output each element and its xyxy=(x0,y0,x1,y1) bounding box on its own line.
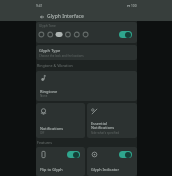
button[interactable]: Glyph Type xyxy=(36,45,137,60)
staticText: ▾▾ 100 xyxy=(127,4,137,8)
button[interactable]: Toggle xyxy=(119,151,132,158)
staticText: None xyxy=(40,94,48,98)
button[interactable]: Toggle xyxy=(67,151,80,158)
button[interactable]: Essential Notifications xyxy=(87,103,137,138)
staticText: Choose the look and feel options xyxy=(39,54,84,57)
staticText: Features xyxy=(37,140,52,145)
staticText: Flip to Glyph xyxy=(40,167,63,172)
button[interactable]: Ringtone xyxy=(36,71,137,101)
staticText: Ringtone xyxy=(40,89,58,94)
staticText: Ringtone & Vibration xyxy=(37,63,73,68)
staticText: Side what's specified xyxy=(91,131,120,135)
staticText: Glyph Interface xyxy=(47,13,84,20)
button[interactable]: Toggle xyxy=(36,147,85,176)
staticText: Glyph Indicator xyxy=(91,167,120,172)
button[interactable]: Toggle xyxy=(119,31,132,38)
button[interactable]: Back xyxy=(38,13,45,20)
staticText: Glyph Type xyxy=(39,48,61,53)
staticText: Glyph Tone xyxy=(39,24,56,28)
staticText: Essential Notifications xyxy=(91,121,115,131)
button[interactable]: Toggle xyxy=(87,147,137,176)
staticText: Off xyxy=(40,131,45,135)
button[interactable]: Notifications xyxy=(36,103,85,138)
staticText: 9:41 xyxy=(36,4,43,8)
staticText: Notifications xyxy=(40,126,64,131)
button[interactable]: Glyph Tone xyxy=(36,22,137,43)
